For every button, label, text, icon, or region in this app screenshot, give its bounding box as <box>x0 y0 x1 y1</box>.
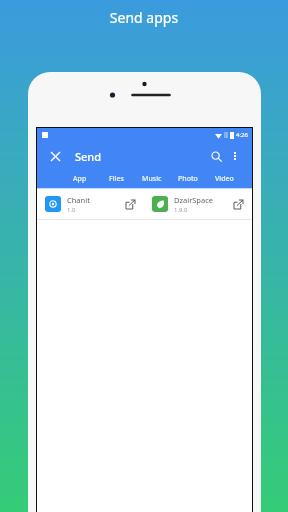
staticText: 1.0 <box>67 206 76 214</box>
staticText: Send apps <box>0 8 288 27</box>
staticText: Files <box>109 174 124 184</box>
button[interactable]: Close <box>45 146 65 166</box>
staticText: Music <box>142 174 162 184</box>
button[interactable]: Open Chanit <box>122 196 138 212</box>
staticText: Chanit <box>67 195 90 205</box>
button[interactable]: Open DzairSpace <box>230 196 246 212</box>
button[interactable]: DzairSpace <box>144 189 252 219</box>
button[interactable]: Music <box>134 170 170 188</box>
staticText: Send <box>75 149 102 164</box>
staticText: App <box>73 174 87 184</box>
staticText: Photo <box>178 174 198 184</box>
button[interactable]: Search <box>206 146 226 166</box>
staticText: 1.9.0 <box>174 206 188 214</box>
button[interactable]: Chanit <box>37 189 144 219</box>
button[interactable]: Video <box>206 170 242 188</box>
staticText: DzairSpace <box>174 195 214 205</box>
button[interactable]: App <box>61 170 98 188</box>
button[interactable]: Files <box>98 170 134 188</box>
staticText: 4:26 <box>236 131 248 139</box>
button[interactable]: Photo <box>170 170 206 188</box>
button[interactable]: More options <box>226 147 244 165</box>
staticText: Video <box>215 174 234 184</box>
